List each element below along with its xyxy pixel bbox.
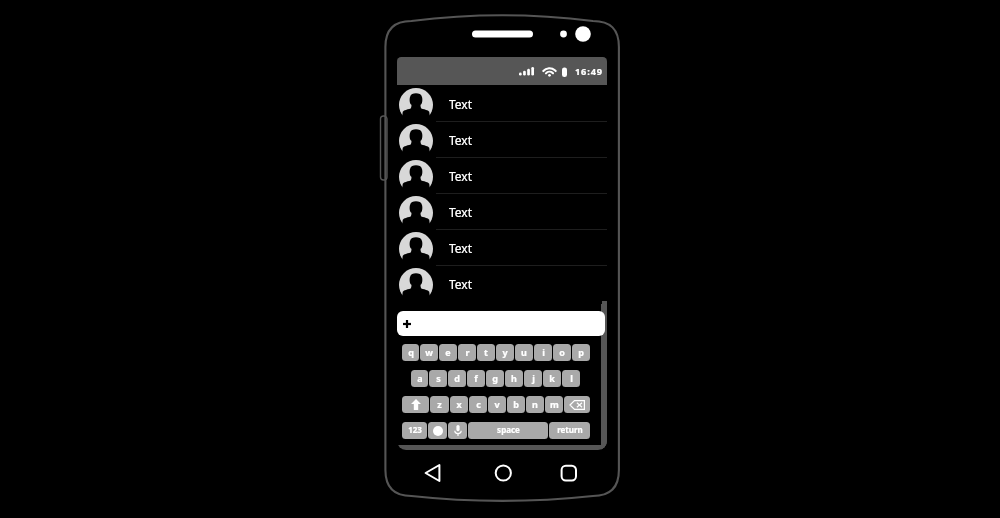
button[interactable]: Text [397,122,607,158]
button[interactable]: Text [397,86,607,122]
button[interactable]: Text [397,230,607,266]
staticText: b [513,398,519,410]
button[interactable]: j [524,370,542,387]
staticText: g [492,372,498,384]
button[interactable]: r [458,344,476,361]
button[interactable]: Text [397,158,607,194]
button[interactable]: z [430,396,449,413]
button[interactable]: t [477,344,495,361]
staticText: z [437,398,442,410]
staticText: c [476,398,481,410]
button[interactable]: w [420,344,438,361]
staticText: k [549,372,555,384]
button[interactable]: 123 [402,422,427,439]
staticText: i [542,346,545,358]
button[interactable]: return [549,422,590,439]
staticText: n [532,398,538,410]
staticText: h [511,372,517,384]
staticText: a [417,372,423,384]
button[interactable]: p [572,344,590,361]
staticText: e [445,346,451,358]
button[interactable]: Text [397,266,607,302]
staticText: p [578,346,584,358]
button[interactable]: Back [418,459,448,487]
button[interactable]: x [450,396,468,413]
button[interactable]: n [526,396,544,413]
button[interactable]: Switch keyboard [428,422,447,439]
staticText: Text [449,240,473,256]
staticText: Text [449,132,473,148]
staticText: Text [449,204,473,220]
staticText: return [557,424,583,435]
staticText: r [465,346,470,358]
staticText: t [484,346,488,358]
staticText: s [436,372,441,384]
staticText: w [425,346,433,358]
staticText: Text [449,168,473,184]
staticText: f [474,372,478,384]
button[interactable]: Text [397,194,607,230]
staticText: space [497,424,520,435]
button[interactable]: d [448,370,466,387]
button[interactable]: Home [488,459,518,487]
staticText: m [550,398,559,410]
button[interactable]: f [467,370,485,387]
button[interactable]: i [534,344,552,361]
staticText: x [456,398,462,410]
staticText: q [408,346,414,358]
button[interactable]: y [496,344,514,361]
button[interactable]: u [515,344,533,361]
staticText: v [494,398,500,410]
staticText: y [502,346,508,358]
button[interactable]: q [402,344,419,361]
button[interactable]: k [543,370,561,387]
button[interactable]: a [411,370,428,387]
staticText: l [570,372,573,384]
staticText: Text [449,276,473,292]
button[interactable]: h [505,370,523,387]
button[interactable]: Backspace [564,396,590,413]
button[interactable]: s [429,370,447,387]
button[interactable]: Voice input [448,422,467,439]
button[interactable]: m [545,396,563,413]
button[interactable]: space [468,422,548,439]
button[interactable]: Add recipient [397,311,605,336]
staticText: Text [449,96,473,112]
staticText: d [454,372,460,384]
button[interactable]: e [439,344,457,361]
staticText: u [521,346,527,358]
button[interactable]: b [507,396,525,413]
staticText: 123 [408,424,422,435]
button[interactable]: c [469,396,487,413]
staticText: 16:49 [575,65,603,78]
staticText: j [532,372,535,384]
button[interactable]: l [562,370,580,387]
button[interactable]: g [486,370,504,387]
staticText: o [559,346,565,358]
button[interactable]: Recent apps [554,459,584,487]
button[interactable]: Shift [402,396,429,413]
button[interactable]: v [488,396,506,413]
button[interactable]: o [553,344,571,361]
